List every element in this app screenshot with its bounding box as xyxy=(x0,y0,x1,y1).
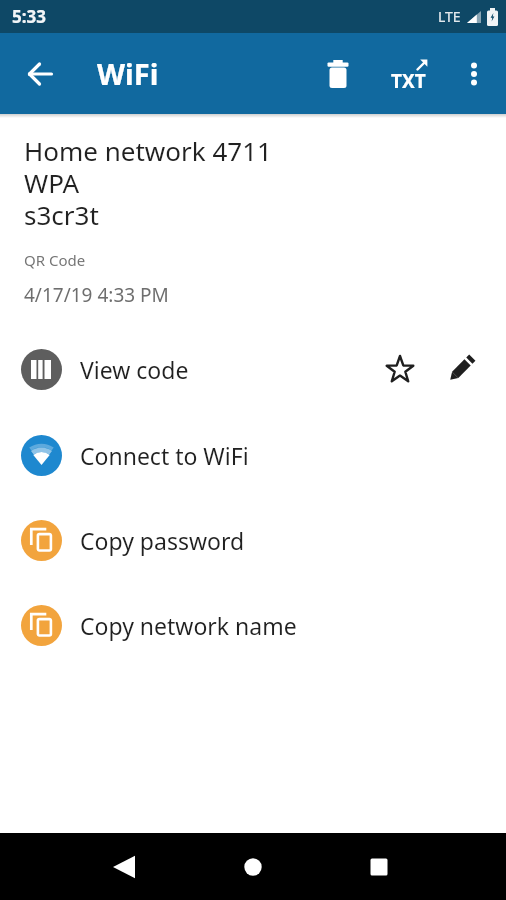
button[interactable] xyxy=(376,345,424,393)
staticText: Connect to WiFi xyxy=(80,440,249,471)
button[interactable]: TXT xyxy=(388,50,436,98)
staticText: Copy network name xyxy=(80,610,297,641)
staticText: 5:33 xyxy=(12,5,46,28)
button[interactable] xyxy=(229,843,277,891)
button[interactable] xyxy=(16,50,64,98)
button[interactable]: Copy network name xyxy=(0,601,506,649)
button[interactable] xyxy=(314,50,362,98)
staticText: Home network 4711 WPA s3cr3t xyxy=(24,133,272,233)
staticText: QR Code xyxy=(24,250,86,270)
staticText: TXT xyxy=(391,68,426,94)
staticText: Copy password xyxy=(80,525,245,556)
button[interactable] xyxy=(355,843,403,891)
staticText: View code xyxy=(80,354,189,385)
button[interactable]: Copy password xyxy=(0,516,506,564)
button[interactable] xyxy=(437,345,485,393)
button[interactable]: View code xyxy=(0,345,506,393)
button[interactable]: Connect to WiFi xyxy=(0,431,506,479)
staticText: LTE xyxy=(438,7,461,26)
button[interactable] xyxy=(100,843,148,891)
staticText: WiFi xyxy=(97,54,159,93)
button[interactable] xyxy=(450,50,498,98)
staticText: 4/17/19 4:33 PM xyxy=(24,282,169,308)
